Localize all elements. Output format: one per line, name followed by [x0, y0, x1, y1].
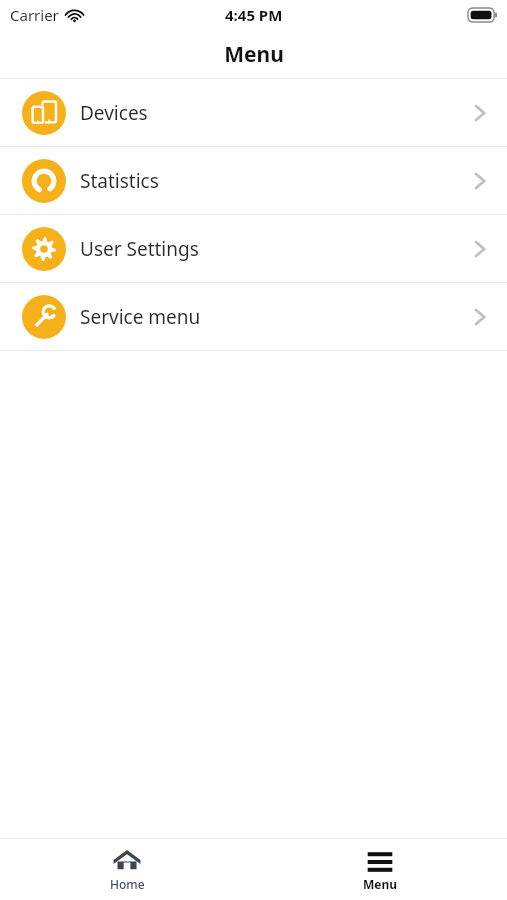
button[interactable]: Statistics: [0, 147, 507, 214]
staticText: 4:45 PM: [225, 5, 283, 25]
other: Home: [113, 847, 141, 873]
staticText: Statistics: [80, 168, 159, 194]
button[interactable]: Menu: [332, 843, 428, 896]
button[interactable]: User Settings: [0, 215, 507, 282]
staticText: Devices: [80, 100, 148, 126]
staticText: User Settings: [80, 236, 199, 262]
staticText: Home: [110, 876, 145, 892]
button[interactable]: Home: [79, 843, 175, 896]
other: Menu: [366, 847, 394, 873]
button[interactable]: Service menu: [0, 283, 507, 350]
staticText: Carrier: [10, 5, 59, 25]
staticText: Service menu: [80, 304, 201, 330]
button[interactable]: Devices: [0, 79, 507, 146]
staticText: Menu: [224, 40, 284, 69]
staticText: Menu: [363, 876, 398, 892]
